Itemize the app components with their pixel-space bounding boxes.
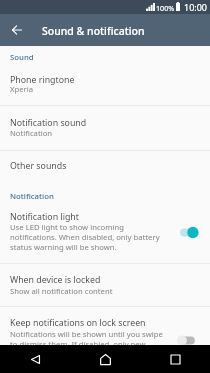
staticText: Sound	[10, 52, 34, 63]
button[interactable]: Navigate up	[1, 14, 33, 46]
staticText: Show all notification content	[10, 286, 113, 296]
button[interactable]: Recent apps	[161, 345, 189, 373]
staticText: Phone ringtone	[10, 74, 75, 86]
staticText: 100%	[156, 3, 175, 13]
button[interactable]	[0, 46, 210, 105]
button[interactable]: Back	[21, 345, 49, 373]
staticText: 10:00	[184, 1, 208, 13]
staticText: Notification	[10, 191, 54, 202]
staticText: Notifications will be shown until you sw…	[10, 329, 167, 359]
button[interactable]	[0, 307, 210, 345]
staticText: Notification	[10, 128, 53, 138]
staticText: When device is locked	[10, 274, 101, 286]
button[interactable]	[0, 264, 210, 306]
staticText: Use LED light to show incoming notificat…	[10, 222, 167, 252]
button[interactable]	[0, 106, 210, 150]
staticText: Notification sound	[10, 117, 87, 129]
staticText: Other sounds	[10, 160, 67, 172]
staticText: Keep notifications on lock screen	[10, 317, 146, 329]
staticText: Xperia	[10, 84, 34, 94]
button[interactable]	[0, 150, 210, 180]
staticText: Sound & notification	[42, 24, 145, 38]
button[interactable]	[0, 204, 210, 263]
staticText: Notification light	[10, 211, 79, 223]
button[interactable]: Home	[91, 345, 119, 373]
